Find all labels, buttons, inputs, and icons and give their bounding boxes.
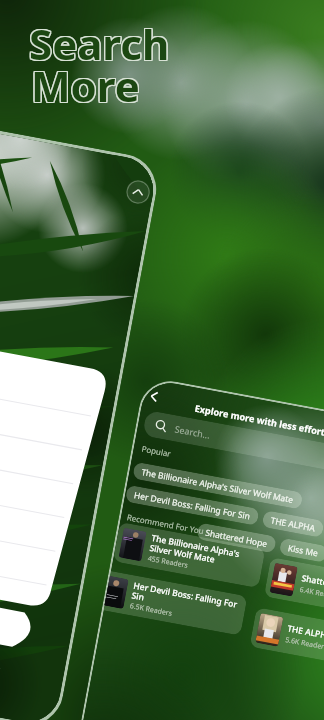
staticText: 6.4K Readers [299,585,324,602]
staticText: Kiss Me [287,542,320,559]
staticText: Her Devil Boss: Falling For Sin [131,579,242,620]
staticText: Recommend For You [126,511,205,536]
button[interactable]: The Billionaire Alpha's Silver Wolf Mate [132,462,303,510]
button[interactable]: THE ALPHA [261,510,324,538]
staticText: More [32,58,141,115]
staticText: Search [29,14,170,71]
staticText: Shattered Hope [301,572,324,596]
staticText: 6.5K Readers [129,601,173,619]
staticText: Explore more with less effort [167,397,324,443]
staticText: The Billionaire Alpha's Silver Wolf Mate [149,532,260,572]
staticText: THE ALPHA [286,622,324,642]
staticText: More [30,58,139,115]
staticText: Search [29,15,170,72]
button[interactable]: Back [143,385,164,406]
staticText: More [31,56,140,113]
button[interactable]: Shattered Hope [196,522,277,553]
staticText: 455 Readers [147,554,189,571]
button[interactable]: Search... [142,410,324,479]
staticText: Search [28,15,169,72]
staticText: The Billionaire Alpha's Silver Wolf Mate [140,466,295,506]
staticText: Search... [174,422,211,441]
staticText: More [32,56,141,113]
button[interactable]: Her Devil Boss: Falling For Sin [125,485,260,526]
staticText: Search [30,15,171,72]
staticText: More [30,57,139,114]
staticText: Popular [141,443,172,459]
staticText: 5.6K Readers [284,635,324,653]
staticText: Search [28,14,169,71]
staticText: More [32,57,141,114]
button[interactable]: The Billionaire Alpha's Silver Wolf Mate [113,522,265,588]
staticText: More [31,57,140,114]
staticText: More [31,58,140,115]
staticText: Shattered Hope [204,527,268,550]
staticText: More [30,56,139,113]
button[interactable]: Her Devil Boss: Falling For Sin [104,571,248,636]
staticText: Her Devil Boss: Falling For Sin [133,489,251,522]
button[interactable]: THE ALPHA [249,607,324,673]
staticText: Search [30,16,171,73]
staticText: Search [28,16,169,73]
button[interactable]: Kiss Me [279,538,324,563]
staticText: Search [30,14,171,71]
button[interactable]: Collapse [124,178,152,206]
button[interactable]: Shattered Hope [264,557,324,622]
staticText: THE ALPHA [270,514,316,534]
staticText: Search [29,16,170,73]
